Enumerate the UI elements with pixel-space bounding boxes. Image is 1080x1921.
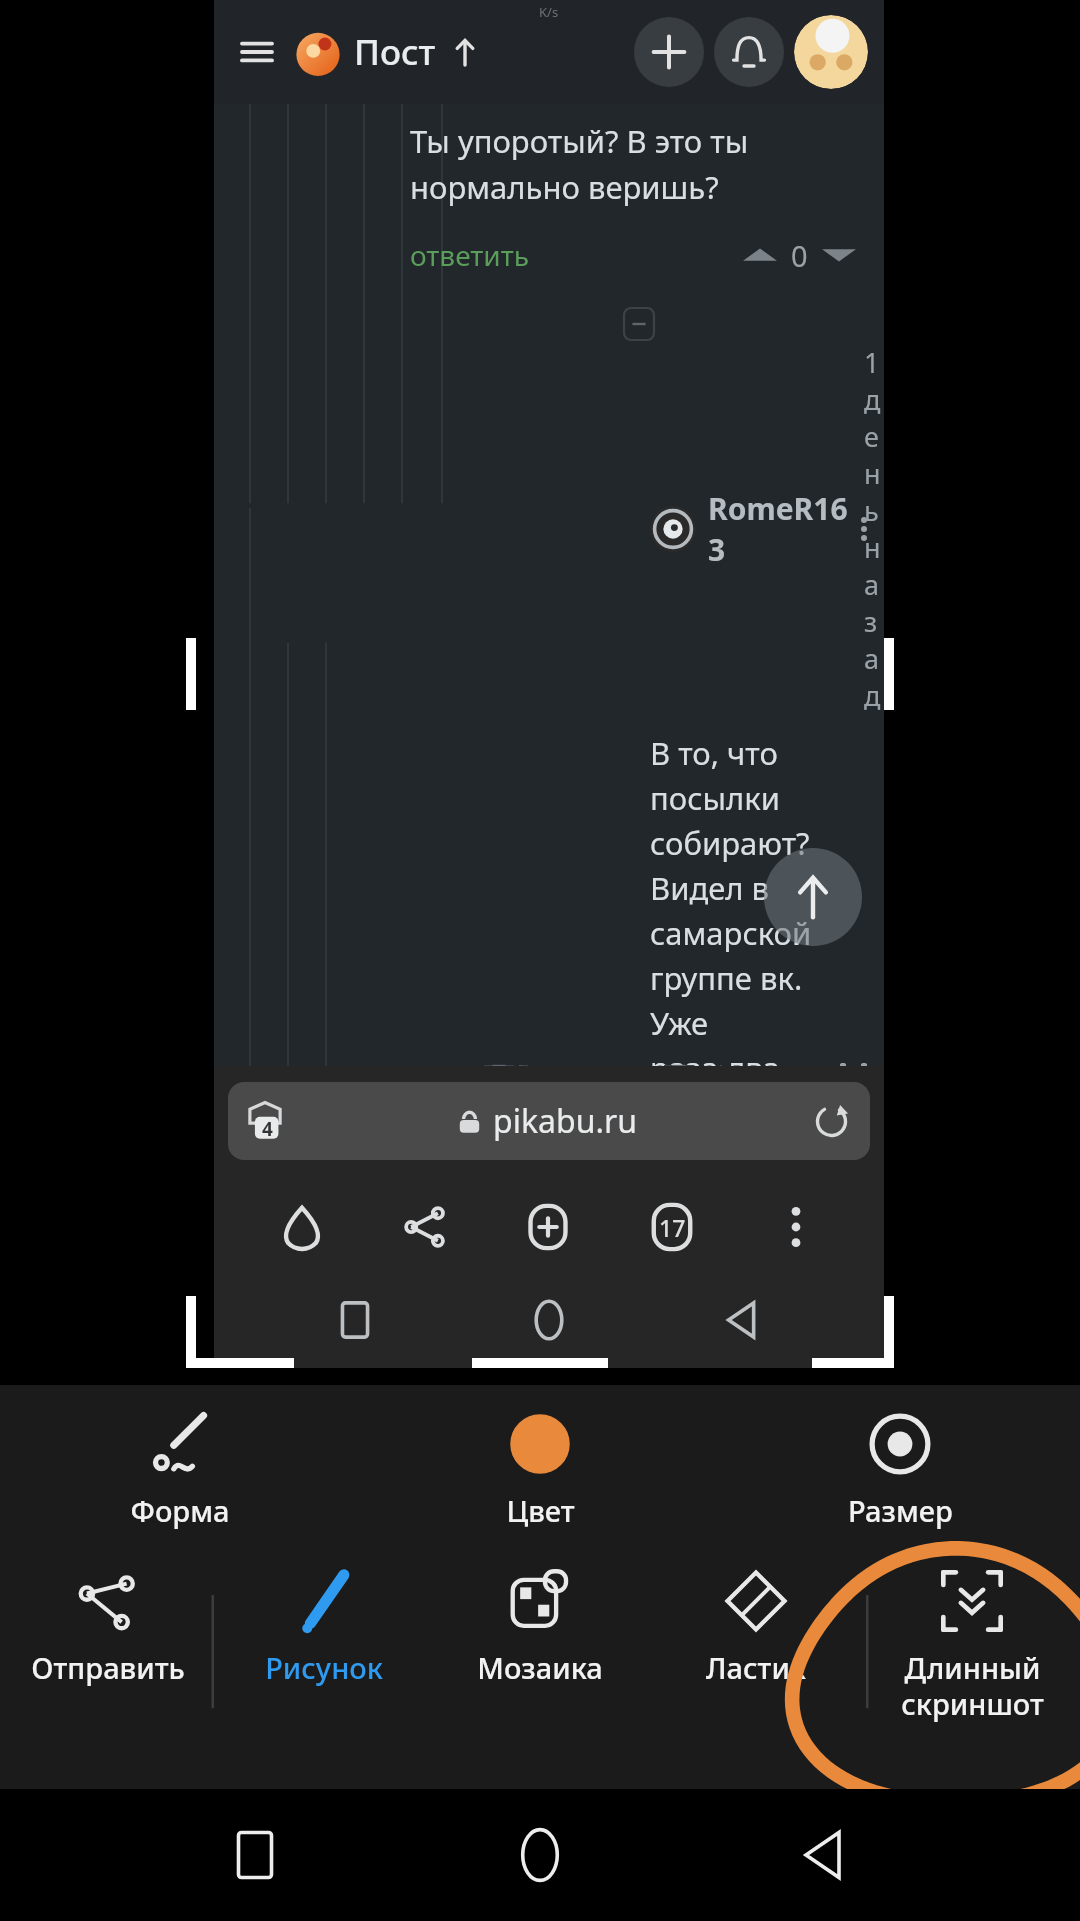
button[interactable]: Отправить xyxy=(0,1564,216,1693)
staticText: В то, что посылки собирают? Видел в сама… xyxy=(650,732,864,1066)
button[interactable]: Цвет xyxy=(360,1407,720,1536)
button[interactable]: Ластик xyxy=(648,1564,864,1693)
staticText: Мозаика xyxy=(477,1648,603,1687)
staticText: Рисунок xyxy=(265,1648,383,1687)
button[interactable]: Scroll to top xyxy=(764,848,862,946)
staticText: Пост xyxy=(354,28,436,76)
button[interactable]: 4 xyxy=(228,1082,870,1160)
staticText: Размер xyxy=(848,1491,953,1530)
button[interactable]: Menu xyxy=(230,25,284,79)
button[interactable]: Notifications xyxy=(714,17,784,87)
button[interactable]: More xyxy=(762,1193,830,1261)
button[interactable]: New tab xyxy=(514,1193,582,1261)
staticText: 4 xyxy=(262,1116,273,1142)
staticText: 0 xyxy=(791,236,808,275)
button[interactable]: RomeR163 xyxy=(708,488,864,570)
button[interactable]: Длинный скриншот xyxy=(864,1564,1080,1730)
button[interactable]: Reload xyxy=(808,1098,854,1144)
button[interactable]: Back xyxy=(711,1288,775,1352)
button[interactable]: Home xyxy=(516,1287,582,1353)
button[interactable]: Мозаика xyxy=(432,1564,648,1693)
staticText: Форма xyxy=(130,1491,230,1530)
staticText: Цвет xyxy=(506,1491,575,1530)
staticText: K/s xyxy=(539,3,559,21)
button[interactable]: Profile xyxy=(794,15,868,89)
button[interactable]: Scroll up xyxy=(448,35,482,69)
staticText: Ластик xyxy=(706,1648,806,1687)
button[interactable]: ответить xyxy=(410,236,530,274)
button[interactable]: Collapse thread xyxy=(624,308,654,340)
button[interactable]: Home xyxy=(500,1815,580,1895)
staticText: pikabu.ru xyxy=(493,1099,638,1143)
button[interactable]: Home xyxy=(268,1193,336,1261)
staticText: Длинный скриншот xyxy=(901,1648,1044,1724)
button[interactable]: Tabs: 17 xyxy=(641,1196,703,1258)
staticText: Ты упоротый? В это ты нормально веришь? xyxy=(410,120,749,208)
button[interactable]: Рисунок xyxy=(216,1564,432,1693)
staticText: 17 xyxy=(659,1212,686,1243)
staticText: Отправить xyxy=(31,1648,185,1687)
button[interactable]: Recents xyxy=(217,1817,293,1893)
button[interactable]: Back xyxy=(787,1817,863,1893)
button[interactable]: Add xyxy=(634,17,704,87)
button[interactable]: Downvote xyxy=(814,230,864,280)
button[interactable]: Upvote xyxy=(735,230,785,280)
button[interactable]: Share xyxy=(391,1193,459,1261)
button[interactable]: Форма xyxy=(0,1407,360,1536)
button[interactable]: Recents xyxy=(323,1288,387,1352)
button[interactable]: Размер xyxy=(720,1407,1080,1536)
